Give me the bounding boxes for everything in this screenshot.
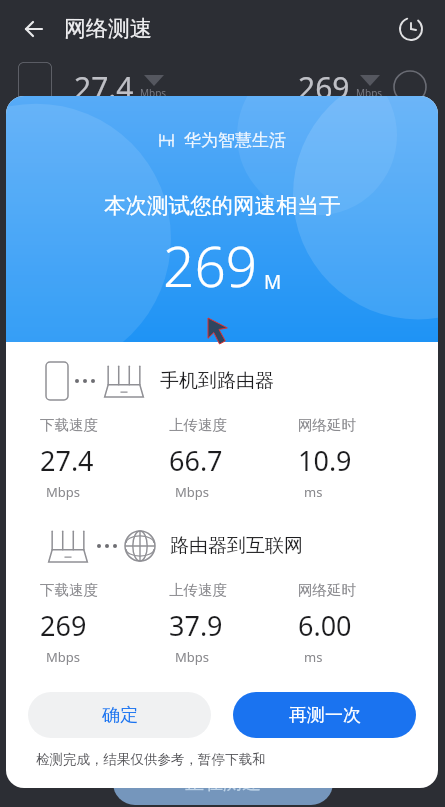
- staticText: 华为智慧生活: [184, 130, 286, 151]
- staticText: 66.7: [169, 442, 223, 479]
- staticText: Mbps: [46, 648, 81, 666]
- staticText: 27.4: [74, 67, 134, 108]
- staticText: 上传速度: [169, 581, 227, 599]
- button[interactable]: History: [391, 9, 431, 49]
- staticText: 37.9: [169, 607, 223, 644]
- staticText: 6.00: [298, 607, 352, 644]
- staticText: 确定: [102, 704, 138, 727]
- staticText: 网络测速: [64, 15, 152, 43]
- button[interactable]: 再测一次: [233, 692, 416, 738]
- staticText: 上传速度: [169, 416, 227, 434]
- staticText: ms: [304, 483, 323, 501]
- staticText: Mbps: [46, 483, 81, 501]
- staticText: Mbps: [175, 648, 210, 666]
- staticText: 路由器到互联网: [170, 534, 303, 558]
- staticText: Mbps: [140, 86, 167, 100]
- staticText: ms: [304, 648, 323, 666]
- staticText: 网络延时: [298, 581, 356, 599]
- staticText: 下载速度: [40, 581, 98, 599]
- staticText: 269: [40, 607, 87, 644]
- staticText: 手机到路由器: [160, 369, 274, 393]
- staticText: M: [264, 269, 282, 295]
- staticText: 27.4: [40, 442, 94, 479]
- staticText: Mbps: [175, 483, 210, 501]
- staticText: 269: [163, 228, 258, 303]
- staticText: 269: [298, 67, 350, 108]
- button[interactable]: Back: [14, 9, 54, 49]
- staticText: 下载速度: [40, 416, 98, 434]
- staticText: 本次测试您的网速相当于: [104, 192, 341, 219]
- staticText: 再测一次: [289, 704, 361, 727]
- staticText: 检测完成，结果仅供参考，暂停下载和: [36, 751, 266, 768]
- staticText: Mbps: [356, 86, 383, 100]
- staticText: 网络延时: [298, 416, 356, 434]
- staticText: 正在测速: [185, 771, 261, 795]
- button[interactable]: 确定: [28, 692, 211, 738]
- staticText: 10.9: [298, 442, 352, 479]
